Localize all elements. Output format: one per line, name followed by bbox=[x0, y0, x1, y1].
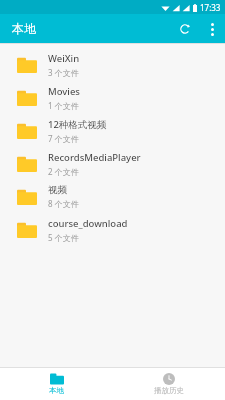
button[interactable]: More options bbox=[199, 16, 225, 42]
button[interactable]: 视频 bbox=[0, 180, 225, 213]
button[interactable]: Refresh bbox=[170, 14, 199, 43]
staticText: 5 个文件 bbox=[48, 232, 79, 243]
staticText: Movies bbox=[48, 85, 80, 98]
staticText: WeiXin bbox=[48, 52, 80, 65]
staticText: course_download bbox=[48, 217, 128, 230]
staticText: 17:33 bbox=[200, 2, 221, 13]
button[interactable]: WeiXin bbox=[0, 48, 225, 81]
button[interactable]: RecordsMediaPlayer bbox=[0, 147, 225, 180]
staticText: 12种格式视频 bbox=[48, 118, 107, 131]
staticText: 本地 bbox=[49, 386, 64, 395]
staticText: 1 个文件 bbox=[48, 100, 79, 111]
staticText: 视频 bbox=[48, 184, 67, 196]
button[interactable]: 播放历史 bbox=[112, 368, 225, 400]
staticText: 7 个文件 bbox=[48, 133, 79, 144]
staticText: 3 个文件 bbox=[48, 67, 79, 78]
button[interactable]: 本地 bbox=[0, 368, 112, 400]
staticText: 8 个文件 bbox=[48, 198, 79, 209]
button[interactable]: 12种格式视频 bbox=[0, 114, 225, 147]
staticText: 2 个文件 bbox=[48, 166, 79, 177]
staticText: RecordsMediaPlayer bbox=[48, 151, 141, 164]
button[interactable]: course_download bbox=[0, 213, 225, 246]
staticText: 播放历史 bbox=[154, 386, 184, 395]
staticText: 本地 bbox=[12, 21, 36, 36]
button[interactable]: Movies bbox=[0, 81, 225, 114]
